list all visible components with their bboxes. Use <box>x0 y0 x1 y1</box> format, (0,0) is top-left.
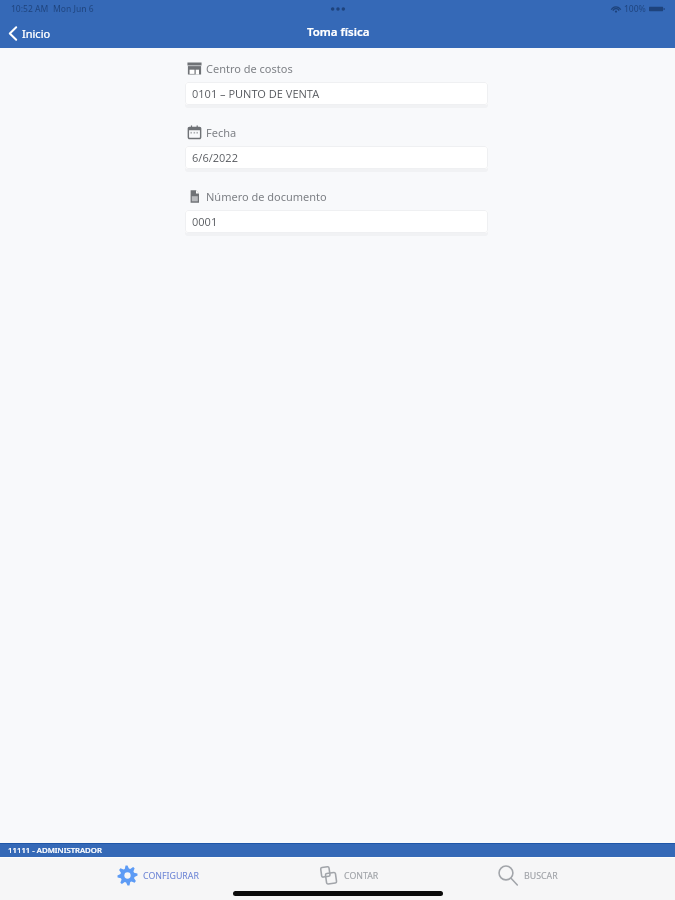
button[interactable]: 0001 <box>185 210 488 233</box>
staticText: CONTAR <box>344 870 379 882</box>
button[interactable]: 0101 – PUNTO DE VENTA <box>185 82 488 105</box>
button[interactable]: BUSCAR <box>496 859 560 892</box>
staticText: 11111 - ADMINISTRADOR <box>8 845 102 856</box>
button[interactable]: 6/6/2022 <box>185 146 488 169</box>
staticText: 6/6/2022 <box>192 150 238 165</box>
button[interactable]: Back <box>0 22 59 45</box>
staticText: Centro de costos <box>206 61 293 76</box>
staticText: Número de documento <box>206 189 327 204</box>
staticText: Mon Jun 6 <box>53 3 94 15</box>
staticText: Inicio <box>22 26 51 41</box>
staticText: 10:52 AM <box>11 3 49 15</box>
staticText: CONFIGURAR <box>143 870 199 882</box>
staticText: Toma física <box>307 24 370 40</box>
button[interactable]: CONTAR <box>316 859 381 892</box>
staticText: BUSCAR <box>524 870 558 882</box>
staticText: Fecha <box>206 125 237 140</box>
other: Back <box>8 26 18 41</box>
staticText: 0001 <box>192 214 218 229</box>
button[interactable]: CONFIGURAR <box>115 859 201 892</box>
staticText: 0101 – PUNTO DE VENTA <box>192 86 320 101</box>
staticText: 100% <box>624 3 646 15</box>
